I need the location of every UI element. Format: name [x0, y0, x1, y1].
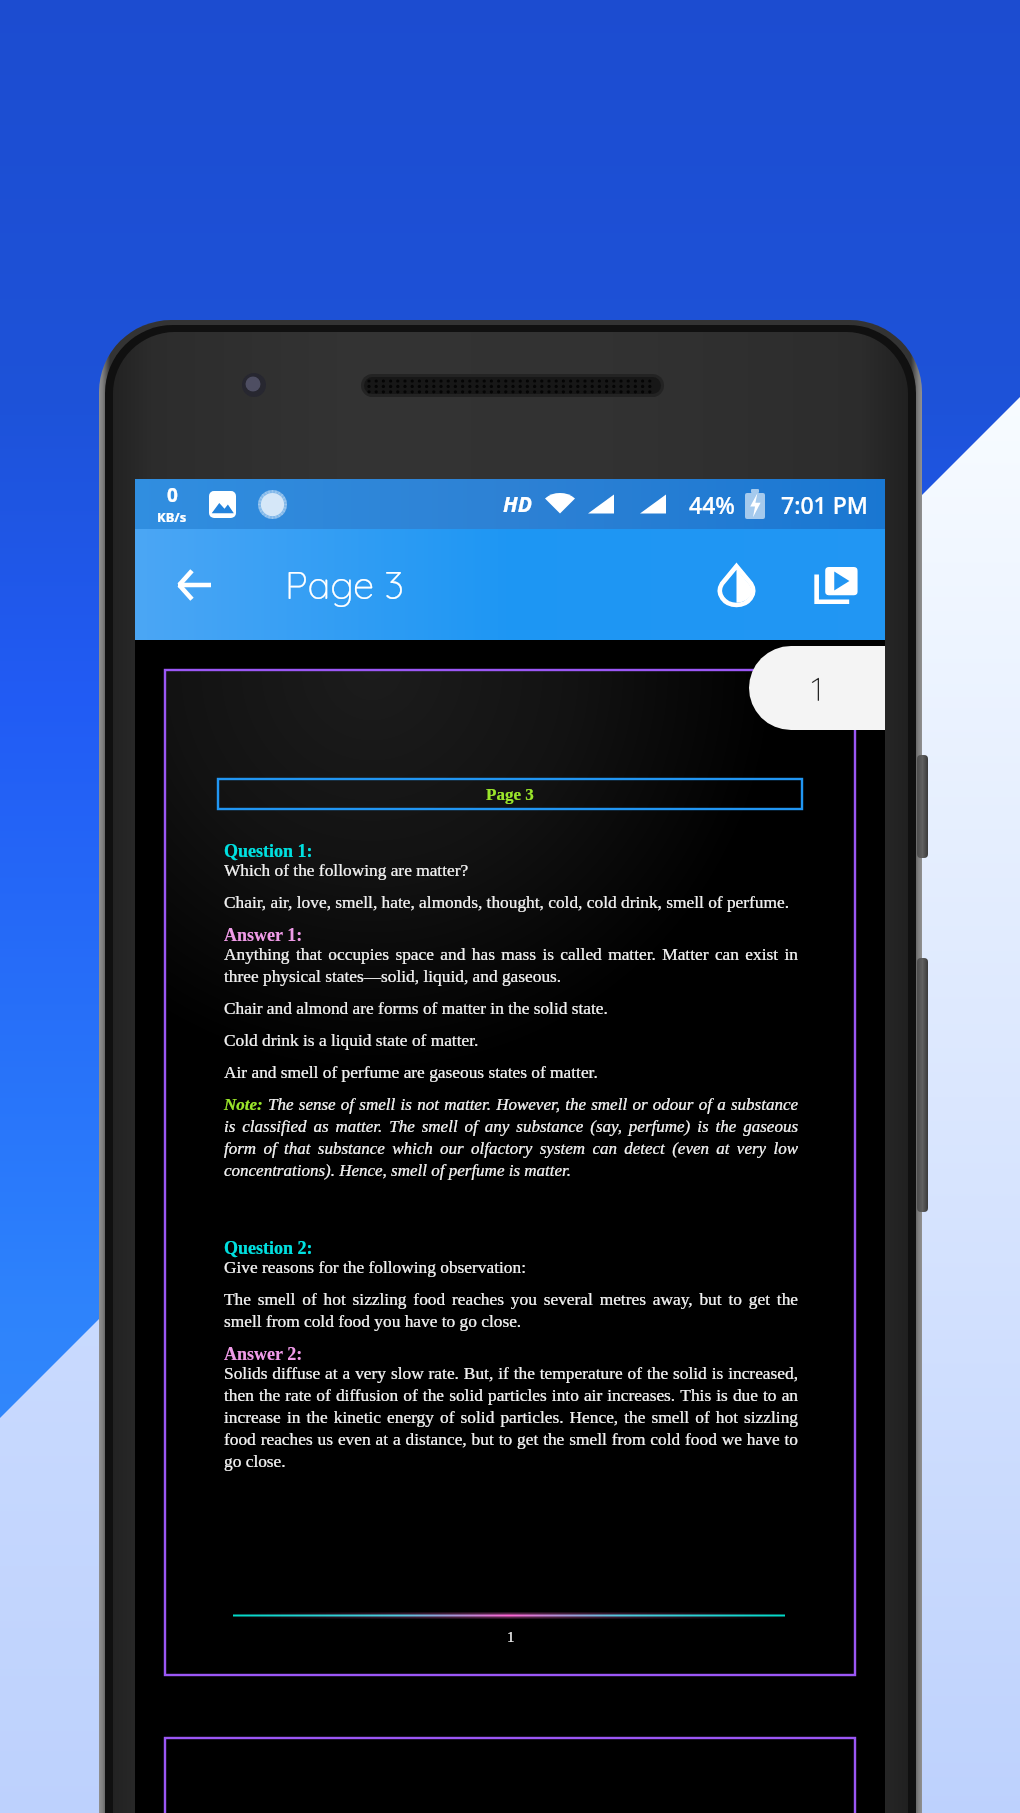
staticText: Cold drink is a liquid state of matter. — [224, 1031, 479, 1050]
staticText: Page 3 — [285, 561, 405, 609]
staticText: Give reasons for the following observati… — [224, 1258, 526, 1277]
staticText: Chair, air, love, smell, hate, almonds, … — [224, 893, 790, 912]
staticText: Page 3 — [486, 785, 534, 804]
staticText: The smell of hot sizzling food reaches y… — [224, 1290, 798, 1331]
staticText: Answer 1: — [224, 925, 303, 945]
button[interactable]: Back — [166, 557, 222, 613]
staticText: 44% — [689, 489, 735, 520]
staticText: Solids diffuse at a very slow rate. But,… — [224, 1364, 798, 1471]
button[interactable]: 1 — [749, 646, 885, 730]
staticText: Air and smell of perfume are gaseous sta… — [224, 1063, 598, 1082]
staticText: 7:01 PM — [781, 489, 868, 520]
staticText: 1 — [811, 668, 823, 709]
staticText: Chair and almond are forms of matter in … — [224, 999, 608, 1018]
staticText: Which of the following are matter? — [224, 861, 469, 880]
staticText: Question 1: — [224, 841, 313, 861]
staticText: 0 — [167, 482, 178, 508]
staticText: Anything that occupies space and has mas… — [224, 945, 798, 986]
button[interactable]: Brightness — [704, 553, 768, 617]
staticText: Answer 2: — [224, 1344, 303, 1364]
staticText: Question 2: — [224, 1238, 313, 1258]
staticText: 1 — [507, 1629, 515, 1646]
staticText: Note: The sense of smell is not matter. … — [224, 1095, 798, 1180]
button[interactable]: Slideshow — [804, 553, 868, 617]
staticText: HD — [503, 490, 532, 519]
staticText: KB/s — [157, 508, 187, 526]
